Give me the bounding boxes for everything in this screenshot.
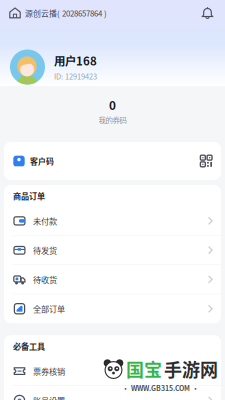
button[interactable]: 全部订单 [4,294,221,323]
staticText: 客户码 [30,155,54,167]
staticText: 必备工具 [13,340,45,352]
button[interactable]: 票券核销 [4,357,221,386]
staticText: 手游网 [164,356,218,382]
staticText: 全部订单 [33,303,65,315]
staticText: 0 [109,96,116,113]
staticText: 待发货 [33,244,57,256]
button[interactable]: 账号设置 [4,386,221,400]
button[interactable]: 通知 [201,1,225,24]
button[interactable]: 待发货 [4,236,221,265]
button[interactable]: 未付款 [4,206,221,236]
staticText: 商品订单 [13,190,45,202]
button[interactable]: 待收货 [4,265,221,294]
staticText: ID: 12919423 [54,71,97,82]
staticText: 国宝 [126,356,162,382]
staticText: 用户168 [54,52,97,69]
button[interactable]: 客户码 [0,142,225,180]
button[interactable]: 源创云播( 2028657864 ) [0,2,107,24]
staticText: 我的券码 [98,115,126,126]
staticText: 账号设置 [33,395,65,400]
staticText: 源创云播( 2028657864 ) [25,7,107,19]
staticText: · WWW.GB315.COM · [122,383,199,393]
staticText: 未付款 [33,215,57,227]
button[interactable]: 0 [0,86,225,126]
button[interactable]: 用户168 [0,27,225,84]
staticText: 待收货 [33,273,57,285]
staticText: 票券核销 [33,365,65,377]
